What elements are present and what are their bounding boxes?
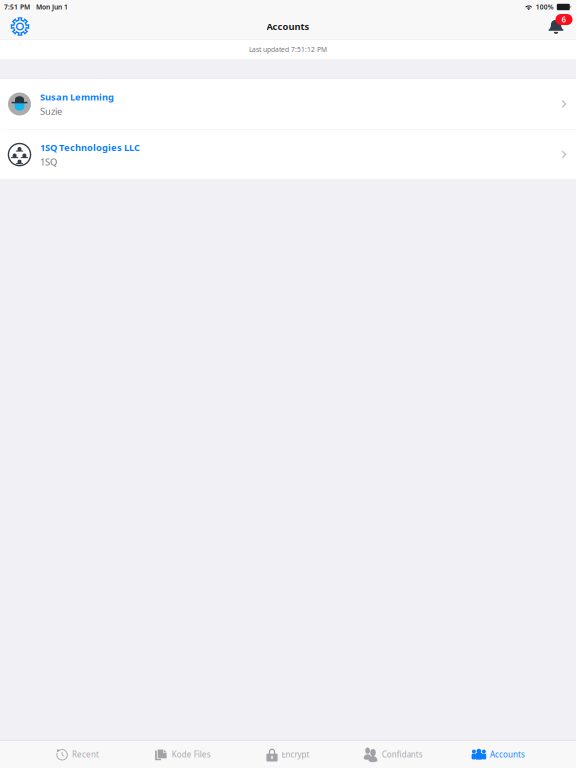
button[interactable]: Notifications xyxy=(542,14,570,38)
staticText: 1SQ xyxy=(40,156,57,168)
button[interactable]: Kode Files xyxy=(130,741,235,768)
staticText: Mon Jun 1 xyxy=(36,3,68,11)
button[interactable]: Encrypt xyxy=(235,741,341,768)
staticText: Last updated 7:51:12 PM xyxy=(249,45,327,54)
staticText: Accounts xyxy=(266,20,309,33)
staticText: Confidants xyxy=(382,749,423,760)
button[interactable]: Recent xyxy=(25,741,130,768)
staticText: Kode Files xyxy=(172,749,211,760)
staticText: Suzie xyxy=(40,105,62,117)
staticText: 6 xyxy=(561,14,566,25)
button[interactable]: Accounts xyxy=(446,741,551,768)
staticText: Susan Lemming xyxy=(40,91,114,103)
button[interactable]: 1SQ Technologies LLC xyxy=(0,130,576,180)
staticText: Encrypt xyxy=(282,749,310,760)
staticText: Recent xyxy=(72,749,99,760)
button[interactable]: Susan Lemming xyxy=(0,79,576,129)
staticText: 1SQ Technologies LLC xyxy=(40,141,140,154)
button[interactable]: Confidants xyxy=(341,741,446,768)
staticText: 100% xyxy=(536,3,554,11)
staticText: 7:51 PM xyxy=(4,3,30,11)
staticText: Accounts xyxy=(490,749,525,760)
button[interactable]: Settings xyxy=(6,14,34,38)
